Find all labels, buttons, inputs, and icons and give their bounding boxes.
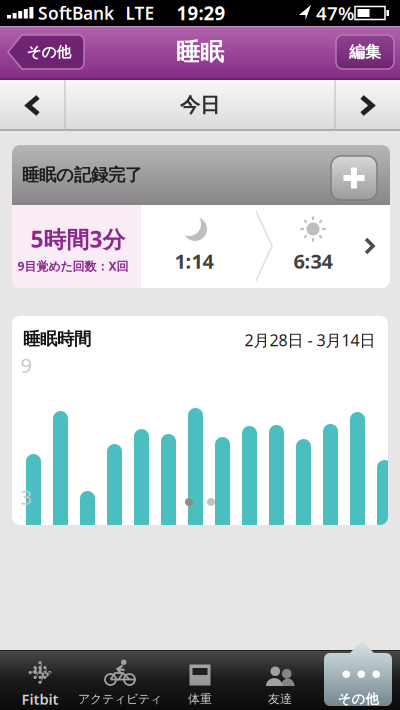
button[interactable]: 体重 [166, 650, 234, 710]
button[interactable] [335, 80, 400, 131]
staticText: 19:29 [176, 1, 225, 25]
button[interactable] [0, 80, 65, 131]
staticText: 今日 [180, 93, 220, 117]
staticText: 3 [20, 484, 31, 510]
button[interactable]: その他 [0, 0, 84, 44]
staticText: 体重 [188, 692, 212, 706]
button[interactable]: その他 [324, 641, 392, 706]
staticText: 5時間3分 [30, 224, 125, 254]
staticText: 47% [316, 1, 354, 25]
button[interactable]: 友達 [246, 650, 314, 710]
button[interactable]: アクティビティ [80, 650, 160, 710]
staticText: 睡眠時間 [23, 328, 91, 350]
button[interactable]: Fitbit [6, 650, 74, 710]
staticText: その他 [26, 43, 71, 61]
staticText: アクティビティ [78, 692, 162, 706]
staticText: Fitbit [21, 689, 58, 709]
staticText: その他 [337, 691, 378, 707]
staticText: SoftBank [38, 1, 114, 24]
staticText: LTE [125, 1, 154, 24]
button[interactable] [12, 205, 390, 288]
staticText: 睡眠 [176, 37, 224, 67]
staticText: 友達 [268, 692, 292, 706]
button[interactable]: 編集 [336, 35, 394, 69]
staticText: 睡眠の記録完了 [22, 164, 142, 186]
button[interactable] [331, 156, 377, 200]
staticText: 編集 [349, 42, 381, 62]
staticText: 2月28日 - 3月14日 [244, 329, 375, 351]
staticText: 9 [20, 352, 31, 378]
staticText: 1:14 [174, 248, 213, 274]
staticText: 9目覚めた回数：X回 [17, 258, 128, 274]
staticText: 6:34 [293, 248, 332, 274]
